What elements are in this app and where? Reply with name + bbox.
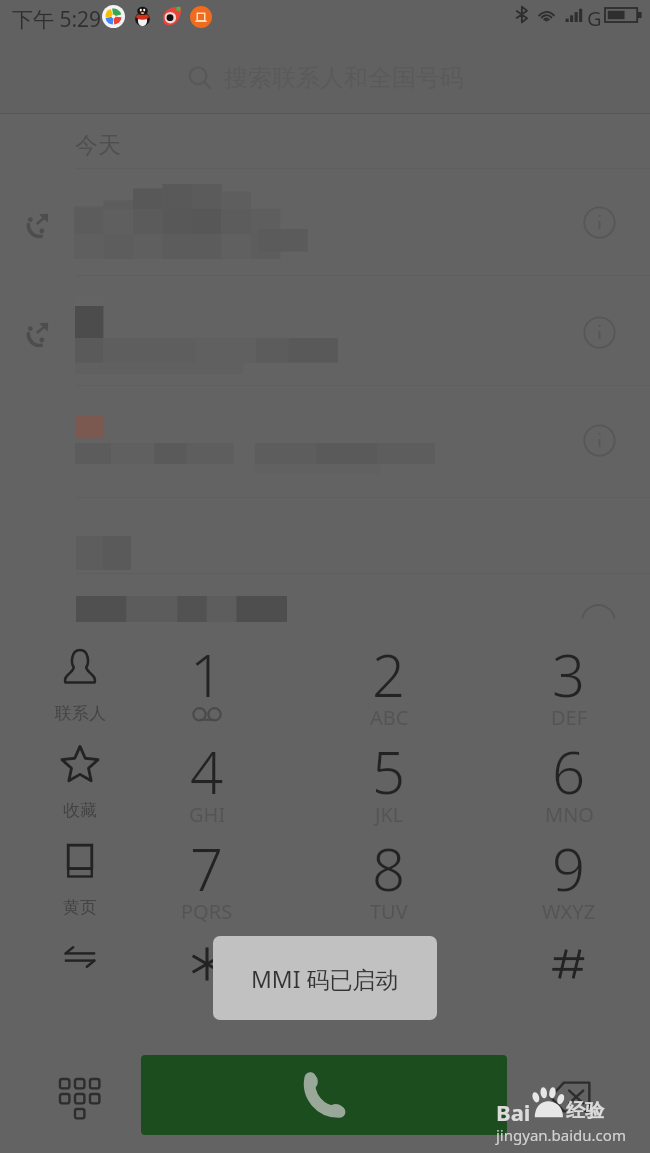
staticText: DEF bbox=[551, 704, 588, 731]
staticText: JKL bbox=[375, 801, 404, 828]
staticText: GHI bbox=[189, 801, 226, 828]
button[interactable] bbox=[132, 931, 282, 1027]
button[interactable]: Call details bbox=[575, 198, 623, 246]
button[interactable]: 5 bbox=[314, 738, 464, 834]
staticText: 6 bbox=[552, 732, 586, 811]
button[interactable]: 7 bbox=[132, 835, 282, 931]
button[interactable]: Call details bbox=[575, 416, 623, 464]
button[interactable]: 3 bbox=[494, 641, 644, 737]
button[interactable]: 联系人 bbox=[5, 641, 155, 737]
staticText: 收藏 bbox=[63, 800, 97, 821]
button[interactable]: Call bbox=[141, 1055, 507, 1135]
button[interactable]: Delete bbox=[534, 1061, 606, 1133]
staticText: 1 bbox=[190, 635, 224, 714]
button[interactable]: 收藏 bbox=[5, 738, 155, 834]
staticText: 经验 bbox=[566, 1099, 604, 1123]
button[interactable]: 6 bbox=[494, 738, 644, 834]
button[interactable]: Call details bbox=[0, 275, 650, 385]
button[interactable]: 0 bbox=[314, 931, 464, 1027]
staticText: 7 bbox=[190, 829, 224, 908]
staticText: 今天 bbox=[75, 131, 121, 160]
button[interactable] bbox=[494, 931, 644, 1027]
staticText: G bbox=[587, 5, 602, 32]
staticText: PQRS bbox=[181, 898, 233, 925]
button[interactable]: Call details bbox=[0, 385, 650, 497]
button[interactable]: Call details bbox=[0, 168, 650, 275]
staticText: WXYZ bbox=[542, 898, 596, 925]
staticText: 下午 5:29 bbox=[12, 5, 102, 34]
staticText: 5 bbox=[372, 732, 406, 811]
staticText: Bai bbox=[496, 1097, 531, 1127]
staticText: 8 bbox=[372, 829, 406, 908]
staticText: ABC bbox=[370, 704, 409, 731]
staticText: jingyan.baidu.com bbox=[496, 1125, 626, 1145]
button[interactable]: swap bbox=[5, 931, 155, 1027]
button[interactable]: 2 bbox=[314, 641, 464, 737]
staticText: MMI 码已启动 bbox=[251, 963, 399, 994]
staticText: 4 bbox=[190, 732, 224, 811]
button[interactable]: Keypad bbox=[44, 1061, 116, 1133]
staticText: 0 bbox=[372, 925, 406, 1004]
button[interactable]: 1 bbox=[132, 641, 282, 737]
button[interactable]: 8 bbox=[314, 835, 464, 931]
button[interactable]: 9 bbox=[494, 835, 644, 931]
staticText: 2 bbox=[372, 635, 406, 714]
button[interactable]: 黄页 bbox=[5, 835, 155, 931]
staticText: 黄页 bbox=[63, 897, 97, 918]
staticText: + bbox=[382, 989, 397, 1024]
button[interactable]: 4 bbox=[132, 738, 282, 834]
staticText: 9 bbox=[552, 829, 586, 908]
staticText: TUV bbox=[370, 898, 408, 925]
staticText: 3 bbox=[552, 635, 586, 714]
staticText: 联系人 bbox=[55, 703, 106, 724]
button[interactable] bbox=[0, 573, 650, 622]
staticText: MNO bbox=[545, 801, 594, 828]
button[interactable]: Call details bbox=[575, 308, 623, 356]
